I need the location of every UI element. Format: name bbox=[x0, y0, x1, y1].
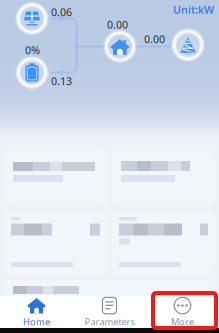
staticText: Parameters bbox=[84, 316, 134, 328]
staticText: 0.00 bbox=[107, 17, 128, 32]
button[interactable]: Home bbox=[0, 291, 73, 333]
staticText: Unit:kW bbox=[173, 2, 214, 17]
staticText: 0.13 bbox=[51, 74, 72, 88]
button[interactable] bbox=[4, 211, 107, 275]
staticText: 0.00 bbox=[144, 32, 165, 46]
button[interactable] bbox=[112, 150, 215, 206]
staticText: 0.06 bbox=[51, 5, 72, 19]
button[interactable] bbox=[112, 211, 215, 275]
button[interactable]: Parameters bbox=[73, 291, 146, 333]
button[interactable]: More bbox=[146, 291, 219, 333]
button[interactable] bbox=[4, 280, 215, 302]
staticText: 0% bbox=[25, 43, 40, 57]
staticText: Home bbox=[23, 316, 50, 328]
button[interactable] bbox=[4, 150, 107, 206]
staticText: More bbox=[171, 316, 194, 328]
